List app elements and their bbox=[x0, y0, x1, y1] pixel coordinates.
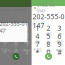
staticText: 9 bbox=[25, 40, 29, 49]
button[interactable]: Call bbox=[12, 53, 19, 60]
staticText: CANCEL bbox=[7, 42, 16, 58]
staticText: 7 bbox=[35, 40, 39, 49]
staticText: 3 bbox=[25, 24, 29, 33]
staticText: TUV bbox=[46, 49, 51, 52]
staticText: 202-555-0147 bbox=[32, 12, 64, 30]
staticText: WXYZ bbox=[23, 49, 31, 52]
staticText: WXYZ bbox=[55, 49, 63, 52]
staticText: 1 bbox=[3, 24, 7, 33]
staticText: 6 bbox=[57, 32, 61, 41]
staticText: * bbox=[3, 48, 7, 57]
staticText: 9 bbox=[57, 40, 61, 49]
staticText: 4 bbox=[3, 32, 7, 41]
staticText: PQRS bbox=[34, 49, 41, 52]
staticText: PQRS bbox=[1, 49, 8, 52]
staticText: 3 bbox=[57, 24, 61, 33]
staticText: 2 bbox=[14, 24, 18, 33]
button[interactable]: Call bbox=[45, 53, 52, 60]
staticText: # bbox=[57, 48, 61, 57]
staticText: JKL bbox=[14, 41, 18, 44]
staticText: MNO bbox=[24, 41, 30, 44]
staticText: 6 bbox=[25, 32, 29, 41]
staticText: * bbox=[35, 48, 39, 57]
staticText: # bbox=[25, 48, 29, 57]
staticText: DEF bbox=[57, 33, 61, 36]
staticText: ABC bbox=[45, 33, 51, 36]
staticText: DEF bbox=[25, 33, 29, 36]
staticText: OK bbox=[19, 48, 24, 53]
staticText: TUV bbox=[13, 49, 18, 52]
button[interactable]: OK bbox=[19, 48, 24, 53]
staticText: 8 bbox=[14, 40, 18, 49]
staticText: + bbox=[47, 57, 49, 60]
staticText: 8 bbox=[46, 40, 50, 49]
staticText: 0 bbox=[14, 48, 18, 57]
staticText: 0 bbox=[46, 48, 50, 57]
staticText: JKL bbox=[46, 41, 50, 44]
staticText: MNO bbox=[56, 41, 62, 44]
staticText: GHI bbox=[2, 41, 7, 44]
staticText: 7 bbox=[3, 40, 7, 49]
staticText: 5 bbox=[46, 32, 50, 41]
button[interactable]: CANCEL bbox=[7, 42, 16, 58]
staticText bbox=[37, 33, 38, 36]
staticText: + bbox=[15, 57, 17, 60]
staticText: 1 bbox=[35, 24, 39, 33]
staticText: 202-555-0147 bbox=[0, 20, 27, 34]
staticText: 4 bbox=[35, 32, 39, 41]
staticText: GHI bbox=[35, 41, 40, 44]
staticText: +1 202 555 0147 bbox=[37, 3, 55, 13]
staticText: 2 bbox=[46, 24, 50, 33]
